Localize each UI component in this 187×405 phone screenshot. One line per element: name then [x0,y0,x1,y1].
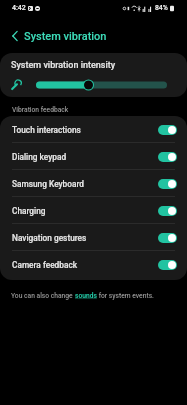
staticText: You can also change [11,292,75,300]
staticText: Camera feedback [12,260,78,270]
button[interactable]: Camera feedback [0,251,187,278]
button[interactable]: Navigation gestures [0,224,187,251]
staticText: Vibration feedback [12,106,69,114]
staticText: Charging [12,206,46,216]
button[interactable]: Navigate up [5,26,24,45]
button[interactable]: Samsung Keyboard [0,170,187,197]
staticText: 4:42 [12,4,26,12]
staticText: Navigation gestures [12,233,87,243]
staticText: Samsung Keyboard [12,179,84,189]
button[interactable]: Charging [0,197,187,224]
staticText: System vibration [24,30,107,43]
staticText: 84% [155,4,168,12]
button[interactable]: sounds [75,292,97,300]
staticText: for system events. [97,292,154,300]
button[interactable]: Dialing keypad [0,143,187,170]
staticText: Touch interactions [12,125,81,135]
button[interactable]: Touch interactions [0,116,187,143]
staticText: System vibration intensity [11,60,116,71]
staticText: Dialing keypad [12,152,67,162]
